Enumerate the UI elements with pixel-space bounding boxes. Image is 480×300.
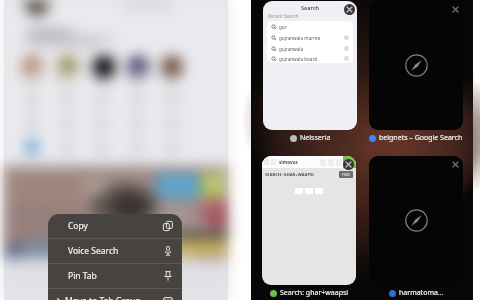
button[interactable]: Close tab — [369, 1, 463, 130]
button[interactable]: Voice Search — [48, 239, 182, 263]
staticText: FIND — [342, 172, 350, 177]
staticText: gujranwala — [279, 46, 304, 52]
staticText: SEARCH: GHAR+WAAPSI — [265, 172, 314, 178]
staticText: harmatoma... — [399, 288, 444, 298]
staticText: beignets – Google Search — [379, 133, 463, 143]
button[interactable]: Close tab — [344, 4, 355, 15]
button[interactable]: Close tab — [369, 156, 463, 285]
button[interactable]: Search — [263, 1, 357, 130]
staticText: gujranwala murree — [279, 35, 321, 41]
button[interactable]: Pin Tab — [48, 264, 182, 288]
staticText: Pin Tab — [68, 270, 97, 282]
button[interactable]: Close tab — [343, 159, 354, 170]
staticText: Search: ghar+waapsi — [280, 288, 349, 298]
staticText: Copy — [68, 220, 88, 232]
staticText: Recent Search — [268, 13, 299, 19]
staticText: Neisseria — [300, 133, 331, 143]
staticText: Move to Tab Group — [65, 295, 141, 300]
staticText: Voice Search — [68, 245, 119, 257]
button[interactable]: Copy — [48, 214, 182, 238]
button[interactable]: Close tab — [450, 159, 461, 170]
staticText: gur — [279, 24, 287, 30]
staticText: Search — [301, 4, 320, 11]
staticText: gujranwala board — [279, 56, 318, 62]
staticText: simovus — [279, 159, 298, 165]
button[interactable]: Move to Tab Group — [48, 289, 182, 300]
button[interactable]: simovus — [262, 156, 356, 285]
button[interactable]: Close tab — [450, 4, 461, 15]
